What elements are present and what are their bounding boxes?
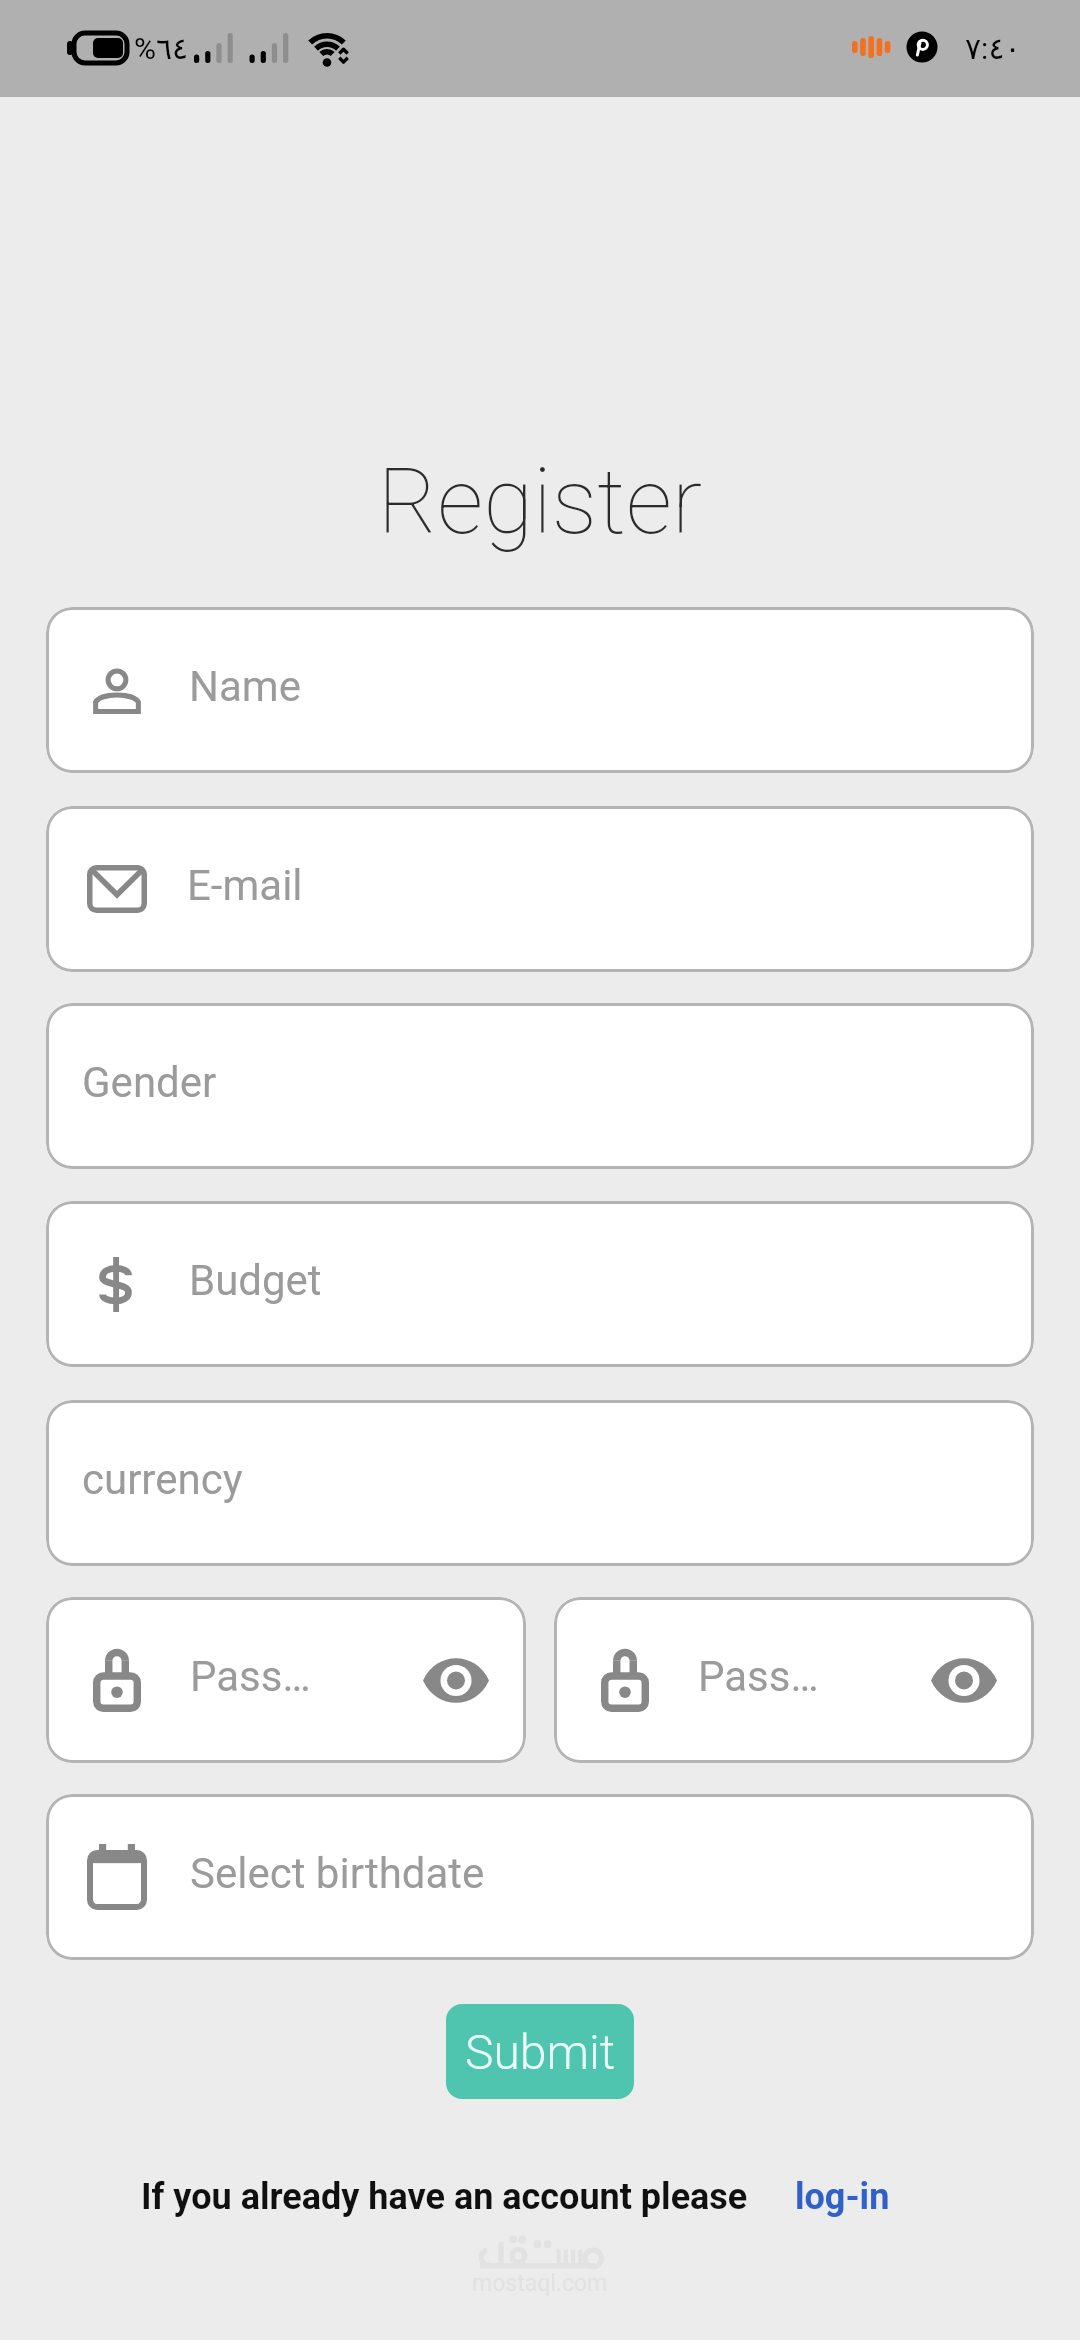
button[interactable]: Show password [423,1658,489,1703]
staticText: Pass… [698,1652,819,1701]
staticText: Name [189,662,301,711]
staticText: log-in [795,2176,890,2218]
staticText: Budget [189,1256,322,1305]
staticText: ٧:٤٠ [965,31,1021,66]
staticText: Pass… [190,1652,311,1701]
staticText: Register [0,449,1080,556]
button[interactable]: Select birthdate [46,1794,1034,1960]
button[interactable]: Pass… [46,1597,526,1763]
staticText: currency [82,1455,243,1504]
button[interactable]: Name [46,607,1034,773]
button[interactable]: Gender [46,1003,1034,1169]
staticText: E-mail [187,861,303,910]
staticText: mostaql.com [472,2270,608,2297]
staticText: Select birthdate [190,1849,485,1898]
button[interactable]: currency [46,1400,1034,1566]
button[interactable]: Show password [931,1658,997,1703]
button[interactable]: Budget [46,1201,1034,1367]
button[interactable]: Pass… [554,1597,1034,1763]
staticText: Gender [82,1058,217,1107]
staticText: Submit [465,2024,616,2080]
staticText: %٦٤ [134,31,189,66]
button[interactable]: E-mail [46,806,1034,972]
staticText: If you already have an account please [141,2176,748,2218]
button[interactable]: log-in [795,2176,890,2218]
button[interactable]: Submit [446,2004,634,2099]
